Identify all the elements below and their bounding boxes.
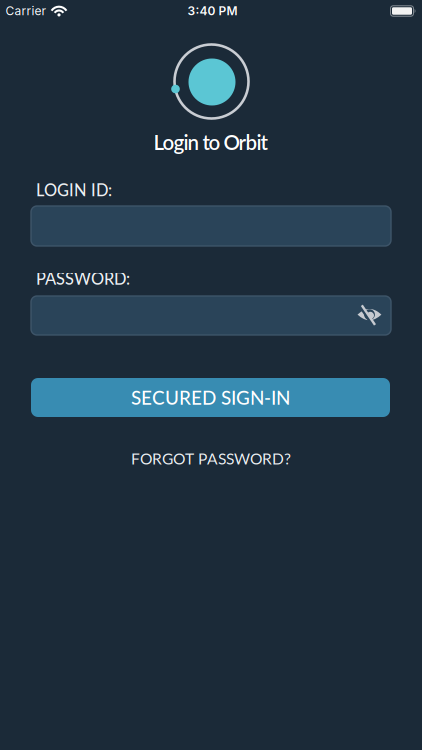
staticText: FORGOT PASSWORD? <box>131 449 291 468</box>
staticText: PASSWORD: <box>36 268 130 288</box>
staticText: Carrier <box>5 4 46 18</box>
staticText: SECURED SIGN-IN <box>131 386 290 409</box>
staticText: 3:40 PM <box>187 4 237 18</box>
textField[interactable]: Password <box>43 302 379 329</box>
staticText: Login to Orbit <box>153 130 268 154</box>
button[interactable]: FORGOT PASSWORD? <box>131 449 291 468</box>
staticText: LOGIN ID: <box>36 180 112 200</box>
button[interactable]: SECURED SIGN-IN <box>31 378 390 417</box>
button[interactable]: Show password <box>353 299 386 332</box>
